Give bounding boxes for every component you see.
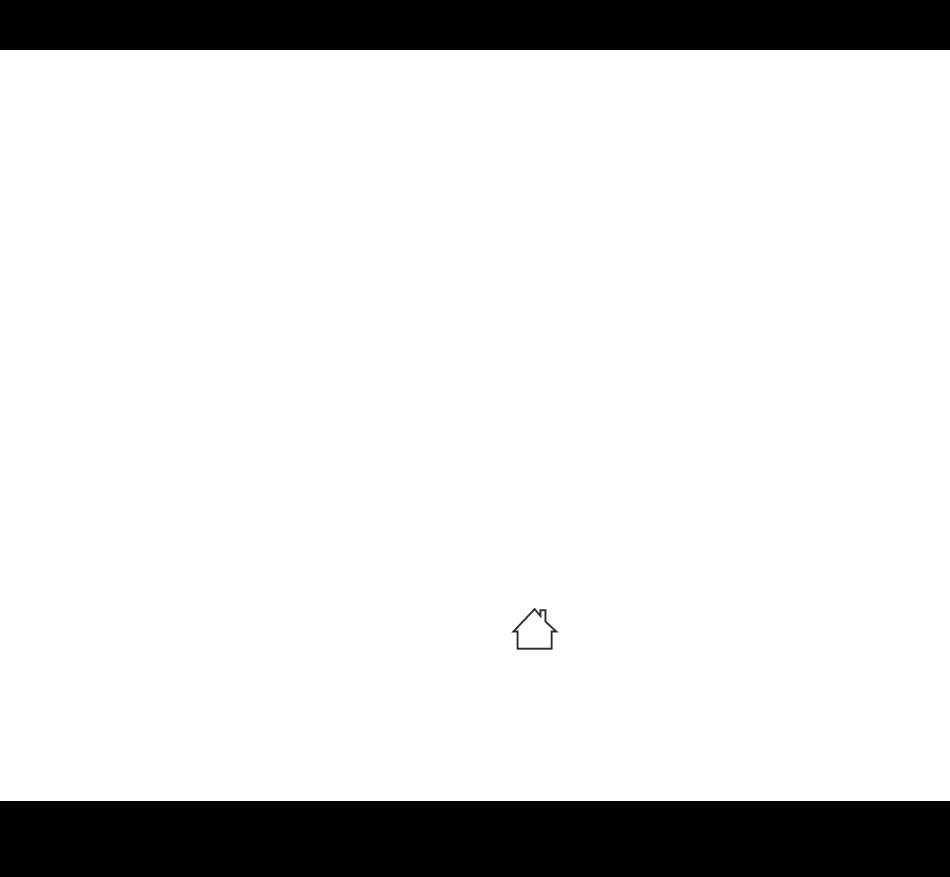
button[interactable]: Home [505, 599, 565, 659]
